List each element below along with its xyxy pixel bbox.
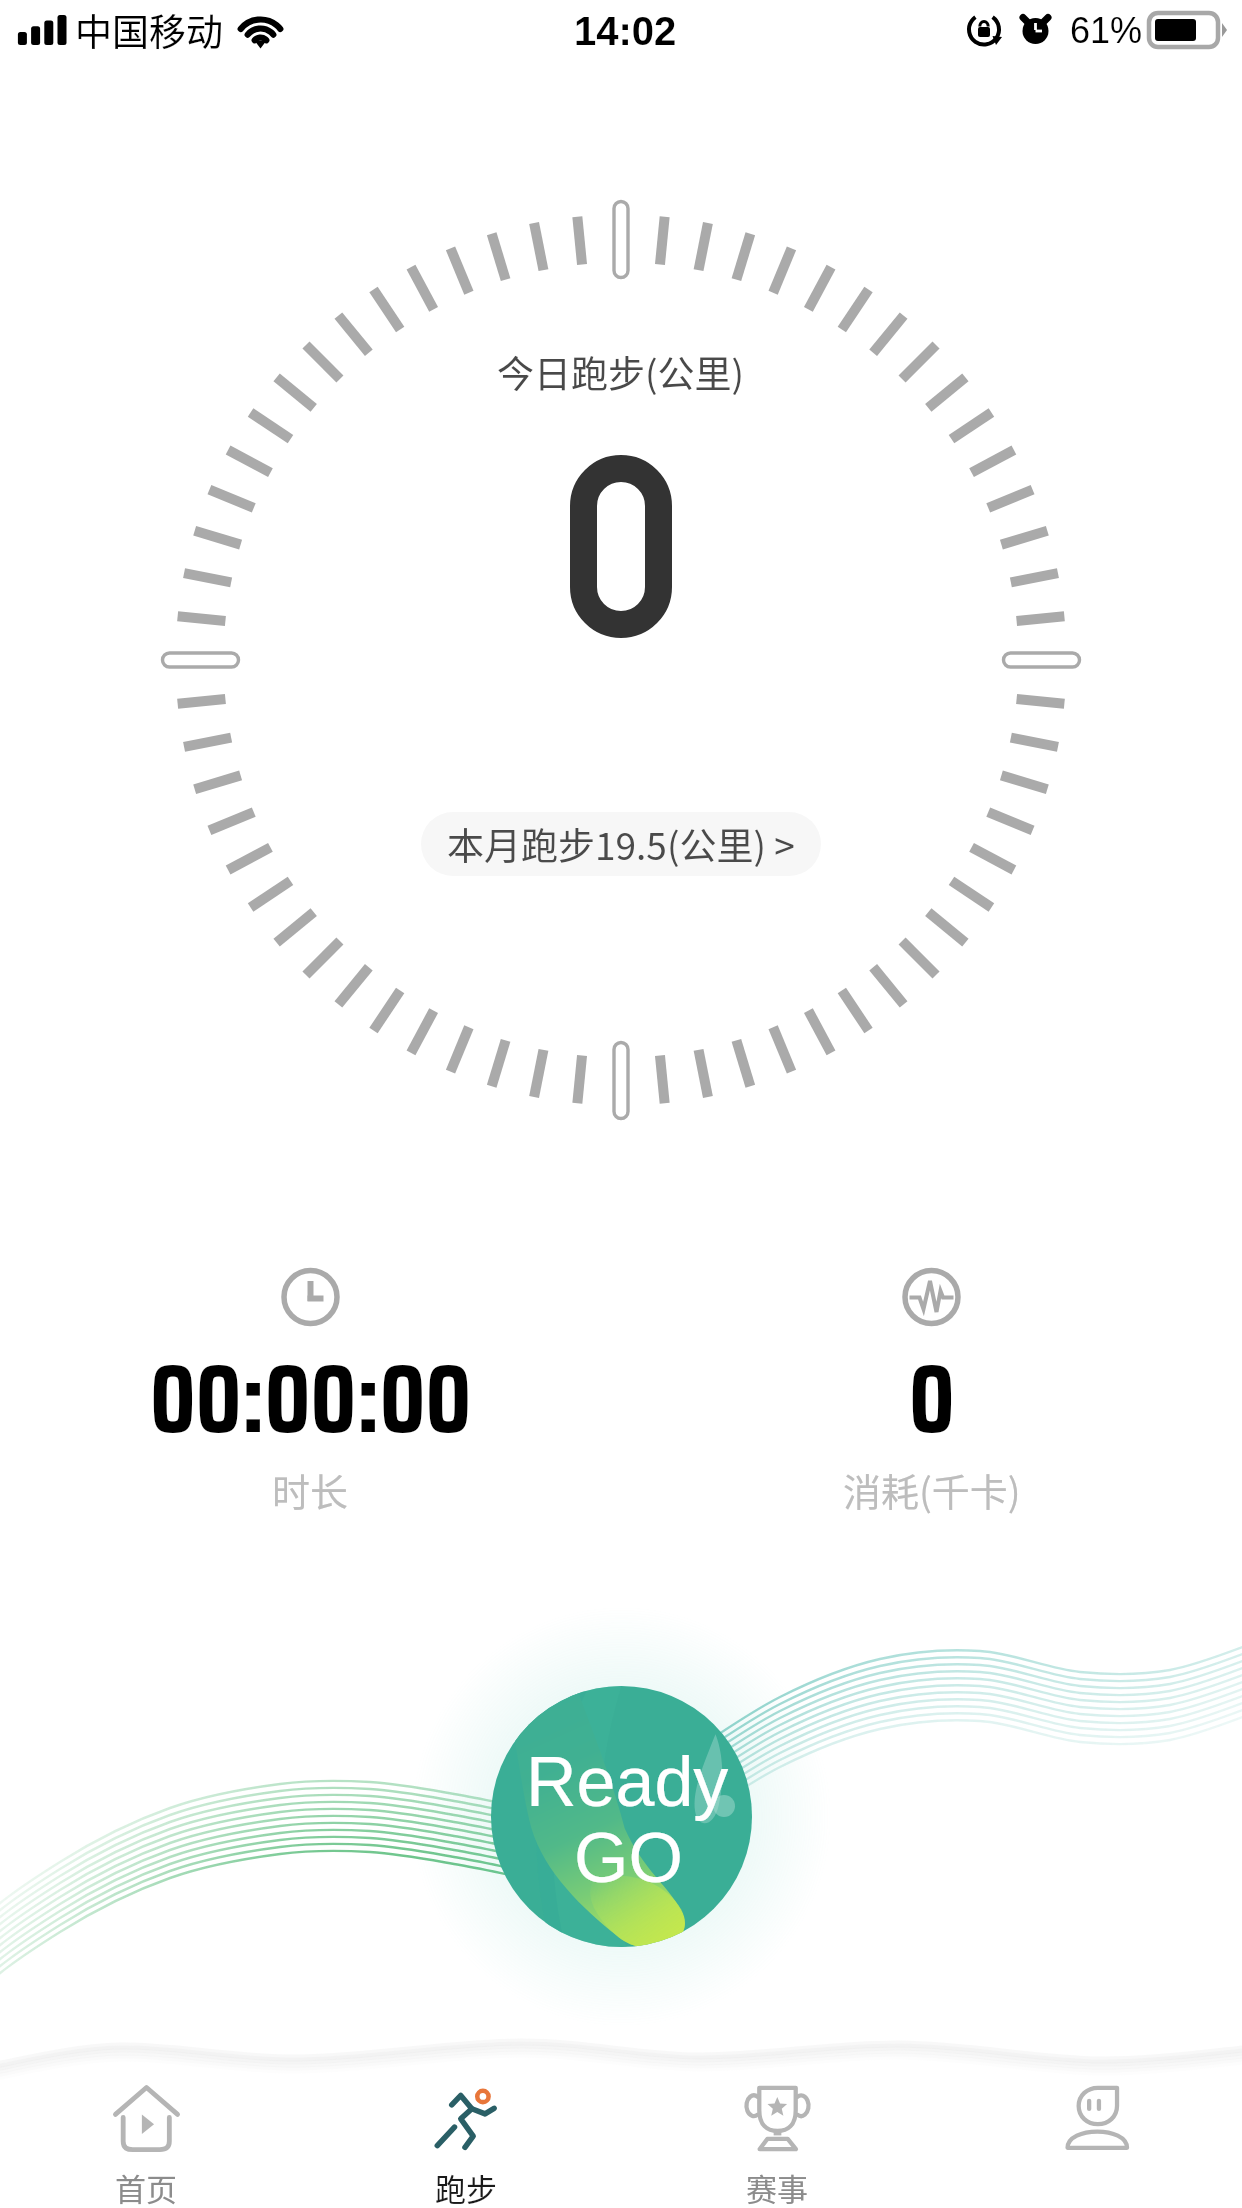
- button[interactable]: Running: [394, 2072, 538, 2208]
- staticText: 00:00:00: [150, 1323, 472, 1474]
- button[interactable]: Home: [74, 2072, 218, 2208]
- button[interactable]: Ready: [491, 1686, 752, 1947]
- staticText: 今日跑步(公里): [497, 345, 745, 399]
- staticText: Ready: [526, 1743, 729, 1821]
- staticText: 14:02: [574, 9, 677, 54]
- staticText: 中国移动: [75, 3, 223, 57]
- button[interactable]: Profile: [1025, 2072, 1169, 2165]
- staticText: GO: [574, 1819, 683, 1897]
- staticText: 61%: [1070, 10, 1143, 50]
- staticText: 赛事: [746, 2165, 808, 2208]
- button[interactable]: 本月跑步19.5(公里) >: [421, 812, 821, 876]
- staticText: 本月跑步19.5(公里) >: [447, 817, 795, 871]
- staticText: 消耗(千卡): [843, 1462, 1021, 1517]
- staticText: 首页: [115, 2165, 177, 2208]
- staticText: 跑步: [435, 2165, 497, 2208]
- staticText: 时长: [272, 1462, 349, 1517]
- staticText: 0: [909, 1323, 955, 1474]
- button[interactable]: Events: [705, 2072, 849, 2208]
